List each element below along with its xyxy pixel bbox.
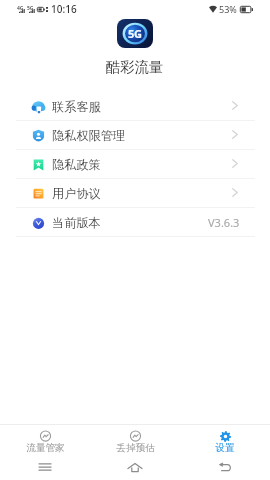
button[interactable]: 当前版本 (0, 208, 270, 236)
staticText: V3.6.3 (208, 215, 240, 230)
staticText: 用户协议 (52, 186, 101, 201)
staticText: 当前版本 (52, 215, 101, 230)
button[interactable]: 隐私政策 (0, 150, 270, 178)
staticText: 设置 (215, 442, 235, 454)
staticText: 联系客服 (52, 99, 101, 114)
staticText: 5G (128, 26, 142, 41)
staticText: 丢掉预估 (116, 442, 155, 454)
staticText: 4G (17, 5, 24, 12)
button[interactable]: Recent apps (32, 454, 58, 480)
button[interactable]: 丢掉预估 (90, 425, 180, 454)
button[interactable]: 设置 (180, 425, 270, 454)
staticText: 隐私权限管理 (52, 128, 126, 143)
staticText: 5G (27, 5, 34, 12)
staticText: 隐私政策 (52, 157, 101, 172)
button[interactable]: 隐私权限管理 (0, 121, 270, 149)
staticText: 流量管家 (26, 442, 65, 454)
button[interactable]: Back (212, 454, 238, 480)
staticText: 酷彩流量 (106, 58, 164, 76)
button[interactable]: Home (122, 454, 148, 480)
staticText: 10:16 (51, 2, 77, 16)
button[interactable]: 用户协议 (0, 179, 270, 207)
button[interactable]: 联系客服 (0, 92, 270, 120)
staticText: 53% (219, 3, 237, 15)
button[interactable]: 流量管家 (0, 425, 90, 454)
